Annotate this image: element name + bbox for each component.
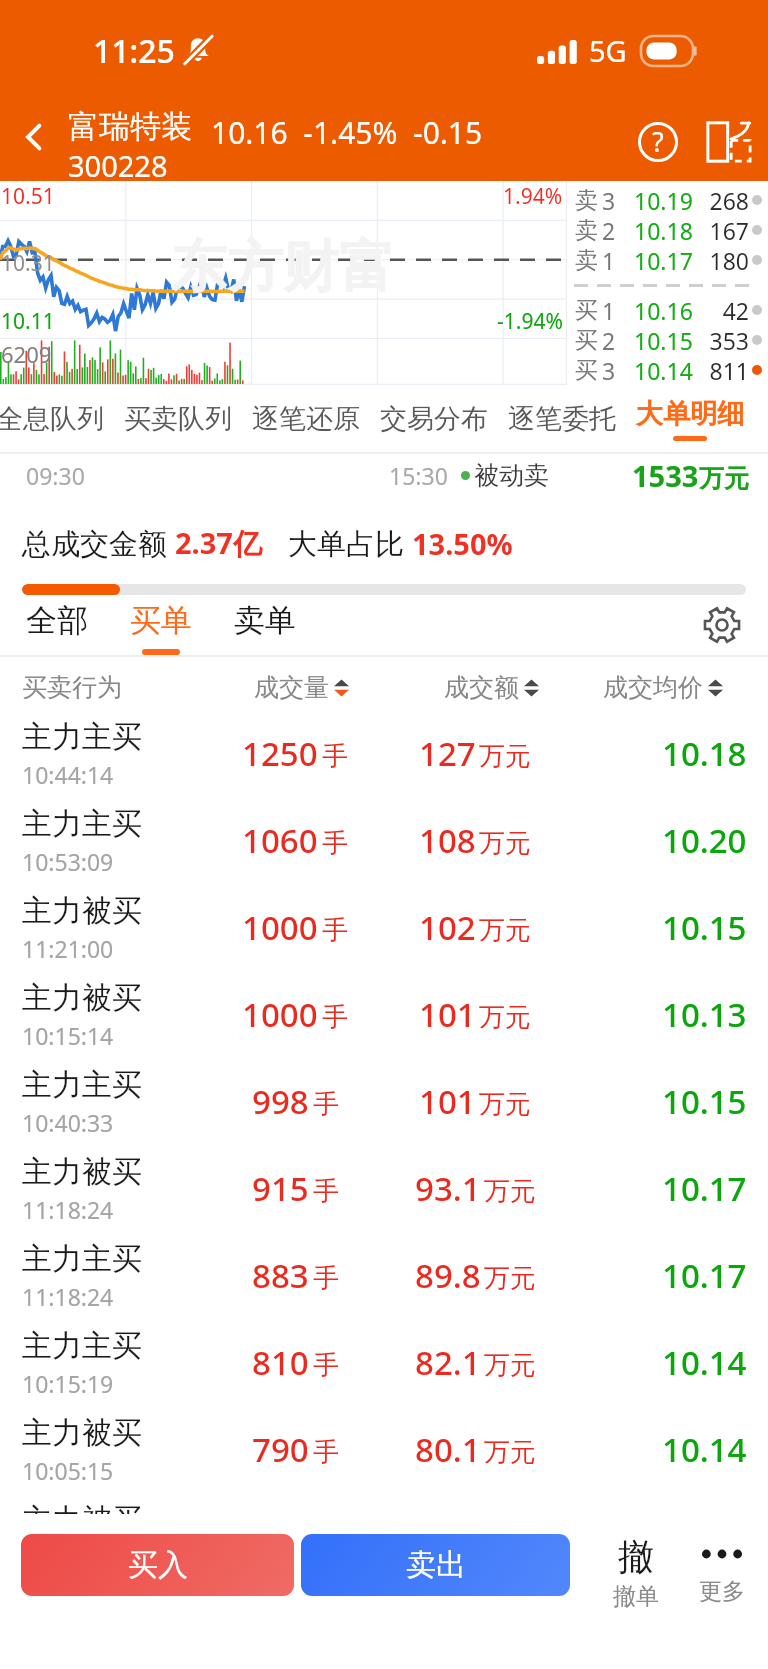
button[interactable]: 主力主买: [0, 797, 768, 884]
staticText: 915: [252, 1166, 309, 1211]
button[interactable]: 主力主买: [0, 1232, 768, 1319]
staticText: 10:15:19: [22, 1368, 114, 1399]
staticText: 10.16: [634, 295, 693, 325]
staticText: 353: [693, 325, 749, 355]
button[interactable]: 成交均价: [580, 672, 746, 703]
staticText: 东方财富: [171, 232, 395, 303]
staticText: 10.18: [662, 731, 747, 776]
button[interactable]: 更多: [686, 1534, 758, 1669]
staticText: 10.17: [662, 1166, 747, 1211]
button[interactable]: 买: [567, 355, 768, 385]
button[interactable]: 主力被买: [0, 884, 768, 971]
staticText: 卖: [575, 216, 598, 245]
button[interactable]: 成交额: [402, 672, 580, 703]
button[interactable]: 逐笔委托: [498, 385, 626, 452]
button[interactable]: 买: [567, 325, 768, 355]
staticText: 卖: [575, 186, 598, 215]
staticText: 1: [602, 295, 616, 325]
button[interactable]: 主力主买: [0, 710, 768, 797]
staticText: 主力被买: [22, 1414, 142, 1452]
button[interactable]: 买卖队列: [114, 385, 242, 452]
staticText: 10.17: [662, 1253, 747, 1298]
staticText: -1.94%: [497, 307, 563, 336]
button[interactable]: 卖出: [301, 1534, 570, 1596]
staticText: 82.1: [415, 1340, 481, 1385]
staticText: 手: [322, 740, 348, 773]
staticText: 手: [322, 914, 348, 947]
button[interactable]: 交易分布: [370, 385, 498, 452]
staticText: 810: [252, 1340, 309, 1385]
staticText: 手: [313, 1175, 339, 1208]
button[interactable]: 大单明细: [626, 385, 754, 452]
button[interactable]: 成交量: [200, 672, 402, 703]
staticText: 11:21:00: [22, 933, 114, 964]
staticText: 10:53:09: [22, 846, 114, 877]
button[interactable]: Back: [0, 93, 68, 181]
staticText: 2: [602, 325, 616, 355]
button[interactable]: 主力被买: [0, 1493, 768, 1514]
button[interactable]: 卖单: [218, 598, 312, 652]
button[interactable]: 主力被买: [0, 971, 768, 1058]
button[interactable]: 全部: [10, 598, 104, 652]
staticText: 10.31: [1, 249, 55, 278]
staticText: 主力主买: [22, 1327, 142, 1365]
staticText: 10:44:14: [22, 759, 114, 790]
staticText: 108: [419, 818, 476, 863]
staticText: 10.14: [662, 1340, 747, 1385]
button[interactable]: 卖: [567, 185, 768, 215]
button[interactable]: 买单: [114, 598, 208, 652]
button[interactable]: Settings: [694, 597, 750, 653]
button[interactable]: 主力主买: [0, 1058, 768, 1145]
staticText: 主力主买: [22, 1240, 142, 1278]
staticText: 全部: [26, 601, 88, 640]
button[interactable]: 买: [567, 295, 768, 325]
button[interactable]: 主力被买: [0, 1406, 768, 1493]
staticText: 万元: [484, 1262, 536, 1295]
button[interactable]: Help: [622, 106, 694, 178]
staticText: 卖: [575, 246, 598, 275]
button[interactable]: 主力主买: [0, 1319, 768, 1406]
button[interactable]: 主力被买: [0, 1145, 768, 1232]
button[interactable]: 卖: [567, 215, 768, 245]
button[interactable]: 买入: [21, 1534, 294, 1596]
staticText: 手: [313, 1349, 339, 1382]
staticText: 万元: [484, 1349, 536, 1382]
staticText: 成交均价: [603, 672, 703, 703]
staticText: 主力被买: [22, 892, 142, 930]
staticText: 10.19: [634, 185, 693, 215]
button[interactable]: Switch layout: [698, 111, 760, 173]
staticText: 2: [602, 215, 616, 245]
staticText: 主力被买: [22, 979, 142, 1017]
staticText: 10.14: [662, 1427, 747, 1472]
staticText: 万元: [479, 914, 531, 947]
staticText: 手: [313, 1436, 339, 1469]
staticText: 被动卖: [474, 460, 549, 491]
staticText: 10.51: [1, 182, 55, 211]
staticText: 883: [252, 1253, 309, 1298]
staticText: 1533: [632, 456, 699, 495]
staticText: 3: [602, 355, 616, 385]
staticText: 10:15:14: [22, 1020, 114, 1051]
staticText: 2.37亿: [175, 523, 262, 563]
button[interactable]: 全息队列: [0, 385, 114, 452]
staticText: 万元: [699, 463, 749, 494]
staticText: 10.18: [634, 215, 693, 245]
staticText: 10:05:15: [22, 1455, 114, 1486]
staticText: 买卖行为: [22, 672, 200, 703]
staticText: 89.8: [415, 1253, 481, 1298]
staticText: 09:30: [26, 460, 85, 491]
staticText: 6209: [1, 339, 52, 369]
staticText: 大单占比: [288, 523, 412, 563]
staticText: 主力主买: [22, 1066, 142, 1104]
button[interactable]: 逐笔还原: [242, 385, 370, 452]
staticText: 102: [419, 905, 476, 950]
staticText: 790: [252, 1427, 309, 1472]
staticText: 101: [419, 992, 476, 1037]
button[interactable]: 撤: [600, 1534, 672, 1669]
staticText: 10:40:33: [22, 1107, 114, 1138]
staticText: 1.94%: [503, 182, 563, 211]
staticText: 1060: [242, 818, 318, 863]
staticText: 成交量: [254, 672, 329, 703]
button[interactable]: 卖: [567, 245, 768, 275]
staticText: 卖出: [406, 1546, 466, 1584]
